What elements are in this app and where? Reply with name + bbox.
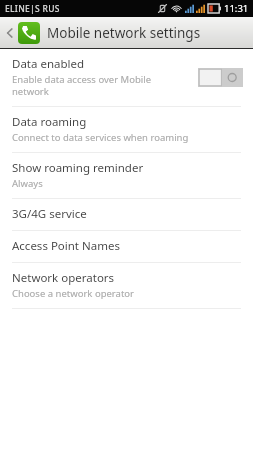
- staticText: Mobile network settings: [47, 24, 201, 42]
- staticText: Choose a network operator: [12, 287, 134, 300]
- staticText: Network operators: [12, 270, 115, 286]
- button[interactable]: Data enabled toggle: [198, 68, 243, 87]
- button[interactable]: 3G/4G service: [0, 199, 253, 230]
- button[interactable]: Back: [0, 17, 253, 48]
- staticText: Enable data access over Mobile network: [12, 73, 157, 98]
- staticText: Connect to data services when roaming: [12, 131, 189, 144]
- staticText: 3G/4G service: [12, 206, 87, 222]
- button[interactable]: Show roaming reminder: [0, 153, 253, 198]
- staticText: Data roaming: [12, 114, 87, 130]
- button[interactable]: Data enabled: [0, 49, 253, 106]
- staticText: ELINE|S RUS: [5, 3, 60, 15]
- button[interactable]: Data roaming: [0, 107, 253, 152]
- button[interactable]: Access Point Names: [0, 231, 253, 262]
- staticText: 11:31: [224, 2, 249, 15]
- other: Back: [4, 27, 16, 39]
- staticText: Access Point Names: [12, 238, 120, 254]
- staticText: Show roaming reminder: [12, 160, 144, 176]
- button[interactable]: Network operators: [0, 263, 253, 308]
- staticText: Always: [12, 177, 43, 190]
- staticText: Data enabled: [12, 56, 85, 72]
